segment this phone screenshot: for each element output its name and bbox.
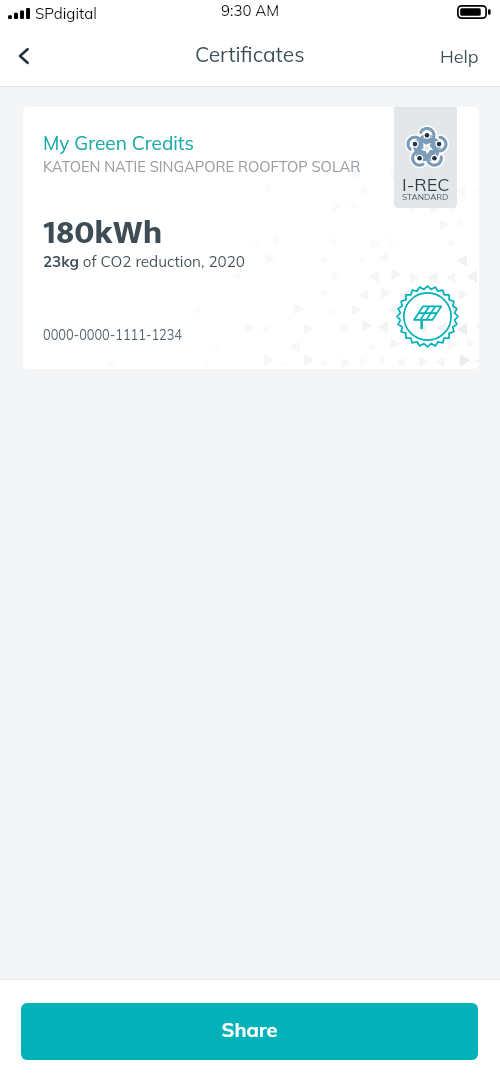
staticText: 9:30 AM [221,1,280,20]
staticText: Certificates [195,41,305,67]
button[interactable]: I-REC [23,107,479,369]
button[interactable]: Help [419,36,500,77]
staticText: Share [221,1017,278,1042]
staticText: STANDARD [402,192,449,203]
staticText: 23kg of CO2 reduction, 2020 [43,252,245,271]
staticText: 0000-0000-1111-1234 [43,325,182,344]
button[interactable]: Share [21,1003,478,1060]
staticText: 180kWh [42,207,163,259]
button[interactable]: Back [2,34,46,78]
staticText: My Green Credits [43,131,194,155]
staticText: KATOEN NATIE SINGAPORE ROOFTOP SOLAR [43,157,361,175]
staticText: Help [440,45,479,68]
staticText: SPdigital [35,4,97,23]
staticText: I-REC [402,173,450,196]
